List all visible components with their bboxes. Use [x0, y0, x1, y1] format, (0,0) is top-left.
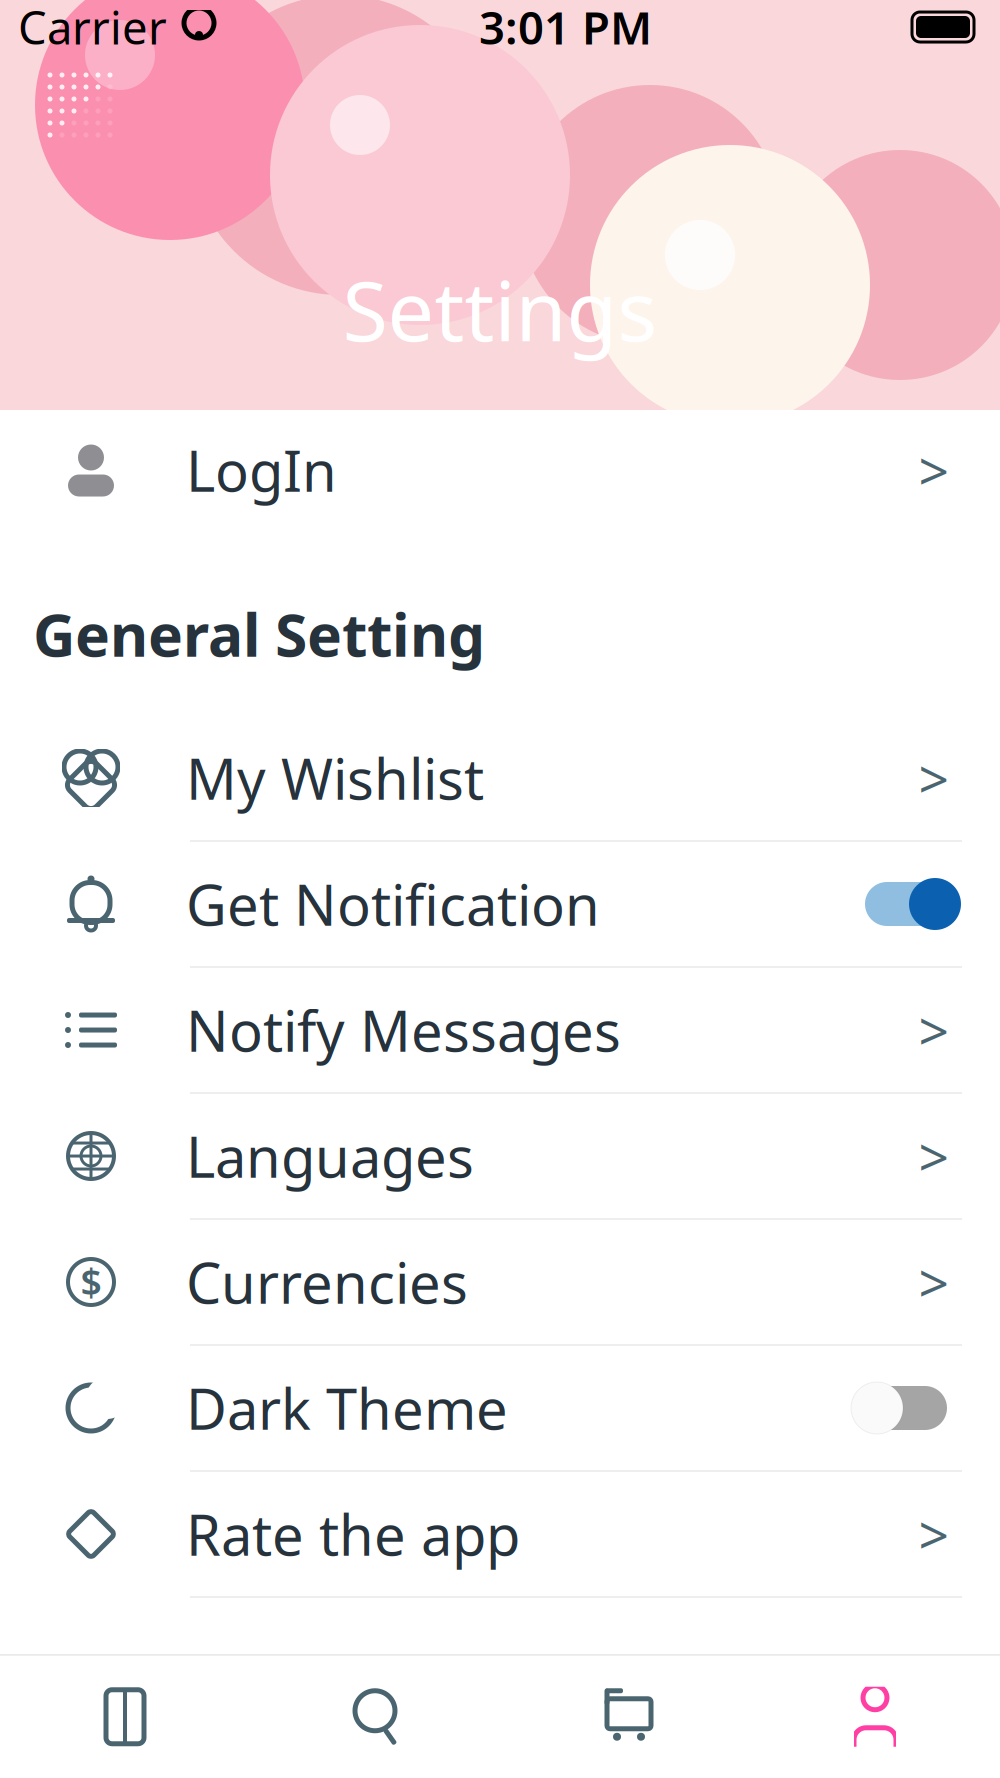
staticText: LogIn [186, 433, 337, 507]
staticText: $ [80, 1257, 101, 1307]
staticText: > [918, 1121, 949, 1191]
staticText: Get Notification [186, 867, 600, 941]
button[interactable]: Search [250, 1656, 500, 1778]
button[interactable]: Dark Theme [0, 1358, 1000, 1484]
button[interactable]: Get Notification [0, 854, 1000, 980]
button[interactable]: Cart [500, 1656, 750, 1778]
staticText: Rate the app [186, 1497, 520, 1571]
button[interactable]: My Wishlist [0, 728, 1000, 854]
staticText: General Setting [33, 595, 485, 673]
button[interactable]: $ [0, 1232, 1000, 1358]
staticText: Currencies [186, 1245, 468, 1319]
staticText: Dark Theme [186, 1371, 508, 1445]
staticText: 3:01 PM [479, 0, 652, 57]
staticText: > [918, 743, 949, 813]
button[interactable]: Languages [0, 1106, 1000, 1232]
button[interactable]: Account [750, 1656, 1000, 1778]
staticText: Notify Messages [186, 993, 621, 1067]
staticText: > [918, 1247, 949, 1317]
staticText: My Wishlist [186, 741, 484, 815]
button[interactable]: LogIn [0, 410, 1000, 530]
staticText: > [918, 435, 949, 505]
staticText: > [918, 995, 949, 1065]
staticText: Carrier [18, 0, 167, 57]
staticText: > [918, 1499, 949, 1569]
button[interactable]: Notify Messages [0, 980, 1000, 1106]
button[interactable]: Catalog [0, 1656, 250, 1778]
staticText: Settings [342, 254, 657, 364]
button[interactable]: Rate the app [0, 1484, 1000, 1610]
staticText: Languages [186, 1119, 474, 1193]
